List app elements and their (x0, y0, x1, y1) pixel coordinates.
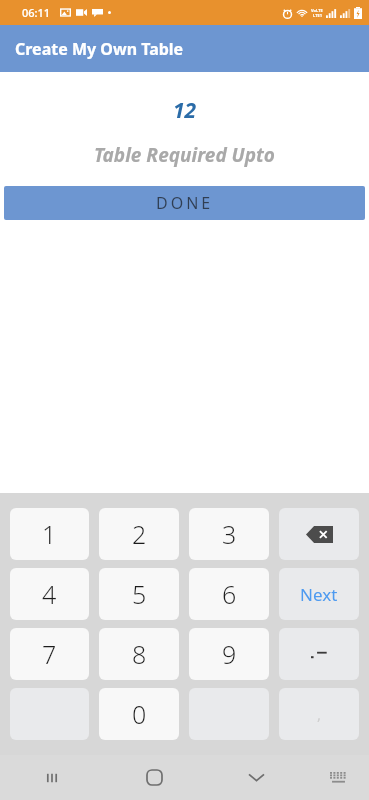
button[interactable]: 6 (189, 568, 269, 620)
button[interactable]: Next (279, 568, 359, 620)
button[interactable]: 1 (10, 508, 89, 560)
staticText: Table Required Upto (0, 142, 369, 168)
button[interactable]: 8 (99, 628, 179, 680)
button[interactable]: 5 (99, 568, 179, 620)
button[interactable]: 9 (189, 628, 269, 680)
staticText: Next (300, 583, 338, 606)
button[interactable]: Change keyboard (307, 755, 369, 800)
staticText: 06:11 (22, 5, 51, 20)
button[interactable]: 7 (10, 628, 89, 680)
staticText: 6 (222, 577, 237, 611)
staticText: 2 (132, 517, 147, 551)
button[interactable]: 0 (99, 688, 179, 740)
staticText: 3 (222, 517, 237, 551)
staticText: 1 (42, 517, 57, 551)
button[interactable]: Hide keyboard (205, 755, 307, 800)
staticText: 7 (42, 637, 57, 671)
staticText: 4 (42, 577, 57, 611)
button[interactable]: 3 (189, 508, 269, 560)
button[interactable]: 2 (99, 508, 179, 560)
staticText: LTE1 (313, 13, 322, 18)
staticText: 12 (0, 96, 369, 125)
staticText: Create My Own Table (15, 38, 184, 60)
staticText: 5 (132, 577, 147, 611)
staticText: VoLTE (311, 8, 323, 13)
staticText: 0 (132, 697, 147, 731)
button[interactable]: Backspace (279, 508, 359, 560)
button[interactable]: DONE (4, 186, 365, 220)
button[interactable]: Recents (0, 755, 103, 800)
button[interactable]: Home (103, 755, 205, 800)
staticText: , (317, 704, 322, 724)
button[interactable]: 4 (10, 568, 89, 620)
staticText: 9 (222, 637, 237, 671)
button[interactable]: Symbols (279, 628, 359, 680)
staticText: 8 (132, 637, 147, 671)
staticText: DONE (156, 192, 214, 214)
